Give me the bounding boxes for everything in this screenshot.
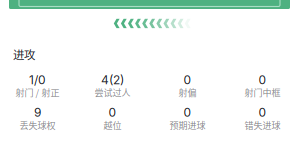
staticText: 尝试过人 <box>94 86 130 99</box>
button[interactable]: 0 <box>150 74 225 97</box>
staticText: 0 <box>258 105 266 120</box>
button[interactable]: 0 <box>150 107 225 129</box>
staticText: 0 <box>183 72 191 87</box>
staticText: 越位 <box>103 118 121 131</box>
staticText: 0 <box>258 72 266 87</box>
staticText: 射偏 <box>178 86 196 99</box>
staticText: 预期进球 <box>169 118 205 131</box>
staticText: 4(2) <box>101 72 124 87</box>
button[interactable]: 4(2) <box>75 74 150 97</box>
staticText: 9 <box>34 105 41 120</box>
staticText: 1/0 <box>29 72 46 87</box>
staticText: 进攻 <box>13 46 35 63</box>
staticText: 错失进球 <box>244 118 280 131</box>
button[interactable]: 9 <box>0 107 75 129</box>
staticText: 射门 / 射正 <box>15 86 59 99</box>
staticText: 0 <box>183 105 191 120</box>
staticText: 射门中框 <box>244 86 280 99</box>
button[interactable]: 0 <box>225 107 300 129</box>
button[interactable]: 0 <box>225 74 300 97</box>
staticText: 丢失球权 <box>19 118 55 131</box>
staticText: 0 <box>108 105 116 120</box>
button[interactable]: 1/0 <box>0 74 75 97</box>
button[interactable]: 0 <box>75 107 150 129</box>
